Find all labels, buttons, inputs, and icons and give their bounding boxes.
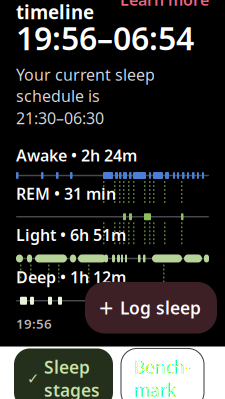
staticText: Your current sleep schedule is — [16, 64, 155, 106]
staticText: Sleep timeline — [16, 0, 94, 24]
button[interactable]: Benchmark — [121, 348, 204, 399]
staticText: 06:54 — [173, 315, 209, 332]
button[interactable]: Learn more — [120, 0, 209, 10]
staticText: Awake — [16, 145, 67, 166]
staticText: 6h 51m — [70, 224, 126, 245]
staticText: + — [99, 291, 113, 324]
staticText: 1h 12m — [70, 266, 126, 288]
staticText: • — [60, 266, 66, 288]
staticText: Benchmark — [134, 355, 191, 399]
staticText: • — [71, 145, 77, 166]
staticText: 2h 24m — [81, 145, 137, 166]
staticText: 01:25 — [94, 315, 130, 332]
button[interactable]: + — [85, 282, 217, 333]
staticText: • — [54, 183, 60, 204]
staticText: Learn more — [120, 0, 209, 10]
staticText: REM — [16, 183, 50, 204]
staticText: ✓ — [27, 370, 39, 387]
staticText: Light — [16, 224, 56, 245]
staticText: 19:56 — [16, 315, 52, 332]
staticText: • — [60, 224, 66, 245]
staticText: Log sleep — [120, 296, 201, 319]
staticText: 21:30–06:30 — [16, 107, 104, 129]
staticText: 31 min — [64, 183, 116, 204]
staticText: Deep — [16, 266, 56, 288]
button[interactable]: ✓ — [14, 348, 113, 399]
staticText: 19:56–06:54 — [16, 16, 194, 59]
staticText: Sleep stages — [44, 355, 100, 399]
